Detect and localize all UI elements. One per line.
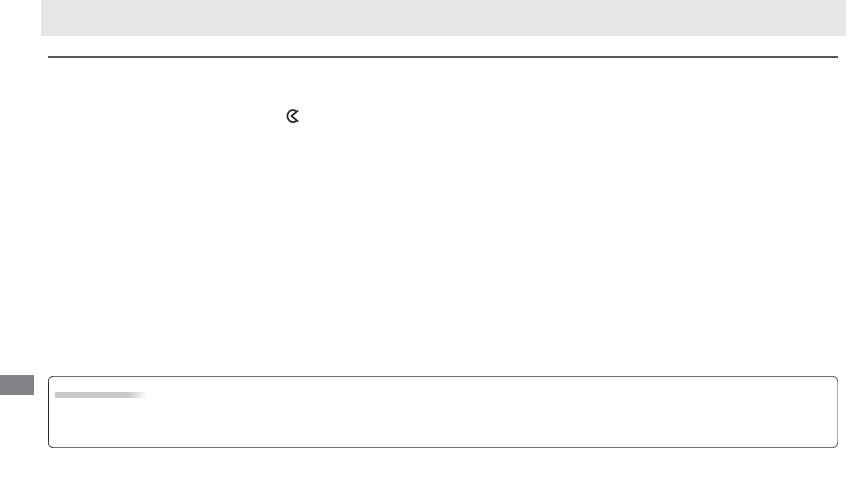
button[interactable] [48,376,838,449]
button[interactable]: Back [285,108,301,124]
